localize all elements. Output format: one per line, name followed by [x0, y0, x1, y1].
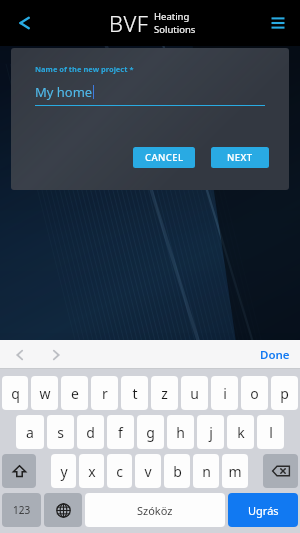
staticText: Done [260, 347, 290, 363]
button[interactable]: Shift [2, 454, 36, 488]
staticText: CANCEL [145, 151, 184, 164]
button[interactable]: g [137, 415, 164, 449]
button[interactable]: w [31, 376, 58, 410]
button[interactable]: Done [260, 347, 290, 363]
staticText: f [118, 423, 123, 442]
button[interactable]: h [167, 415, 194, 449]
button[interactable]: CANCEL [133, 147, 195, 168]
button[interactable]: q [2, 376, 28, 410]
button[interactable]: Next field [46, 345, 66, 365]
staticText: u [190, 384, 199, 403]
staticText: BVF [109, 8, 149, 38]
staticText: q [11, 384, 20, 403]
button[interactable]: Menu [262, 7, 294, 39]
button[interactable]: Backspace [263, 454, 298, 488]
staticText: l [269, 423, 273, 442]
staticText: r [102, 384, 108, 403]
button[interactable]: d [77, 415, 104, 449]
button[interactable]: c [107, 454, 132, 488]
staticText: 123 [13, 503, 31, 517]
staticText: g [146, 423, 155, 442]
button[interactable]: j [197, 415, 224, 449]
button[interactable]: n [193, 454, 219, 488]
staticText: Heating [154, 10, 190, 23]
staticText: z [161, 384, 168, 403]
button[interactable]: NEXT [211, 147, 269, 168]
staticText: t [132, 384, 138, 403]
button[interactable]: l [257, 415, 284, 449]
staticText: b [173, 462, 182, 481]
button[interactable]: Szóköz [85, 493, 225, 527]
button[interactable]: Previous field [10, 345, 30, 365]
staticText: i [223, 384, 227, 403]
staticText: o [250, 384, 259, 403]
button[interactable]: a [16, 415, 44, 449]
staticText: My home [35, 83, 93, 101]
staticText: p [280, 384, 289, 403]
button[interactable]: u [181, 376, 208, 410]
staticText: a [26, 423, 34, 442]
staticText: s [57, 423, 64, 442]
staticText: Solutions [154, 23, 196, 36]
staticText: n [202, 462, 211, 481]
staticText: c [116, 462, 123, 481]
button[interactable]: s [47, 415, 74, 449]
button[interactable]: o [241, 376, 268, 410]
button[interactable]: Change keyboard [44, 493, 82, 527]
button[interactable]: v [135, 454, 161, 488]
button[interactable]: i [211, 376, 238, 410]
staticText: h [176, 423, 185, 442]
button[interactable]: t [121, 376, 148, 410]
button[interactable]: m [222, 454, 248, 488]
staticText: x [88, 462, 96, 481]
staticText: m [228, 462, 242, 481]
staticText: Ugrás [248, 503, 279, 518]
button[interactable]: x [79, 454, 104, 488]
staticText: d [86, 423, 95, 442]
staticText: y [60, 462, 68, 481]
staticText: NEXT [227, 151, 253, 164]
button[interactable]: k [227, 415, 254, 449]
staticText: Name of the new project * [35, 64, 134, 74]
button[interactable]: r [91, 376, 118, 410]
button[interactable]: p [271, 376, 298, 410]
button[interactable]: f [107, 415, 134, 449]
staticText: v [144, 462, 152, 481]
staticText: e [71, 384, 79, 403]
button[interactable]: Ugrás [228, 493, 298, 527]
staticText: k [237, 423, 245, 442]
staticText: w [39, 384, 51, 403]
button[interactable]: 123 [2, 493, 41, 527]
button[interactable]: y [51, 454, 76, 488]
button[interactable]: e [61, 376, 88, 410]
button[interactable]: Back [8, 8, 38, 38]
staticText: Szóköz [137, 503, 173, 518]
staticText: j [209, 423, 213, 442]
button[interactable]: z [151, 376, 178, 410]
button[interactable]: b [164, 454, 190, 488]
